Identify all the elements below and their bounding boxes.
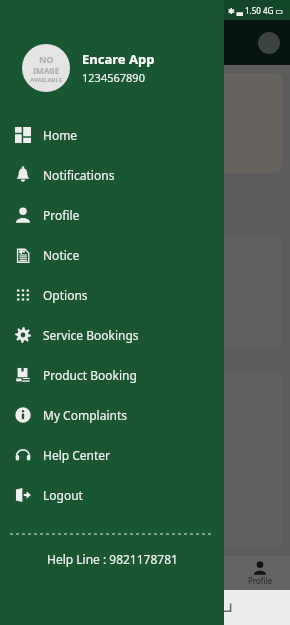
button[interactable]: My Complaints: [0, 395, 224, 435]
staticText: Active Plan: [29, 136, 81, 150]
staticText: 1234567890: [82, 70, 145, 85]
staticText: Options: [43, 287, 88, 303]
staticText: Profile: [43, 207, 80, 223]
button[interactable]: Options: [0, 275, 224, 315]
staticText: NO: [39, 53, 54, 65]
staticText: Home: [43, 127, 78, 143]
staticText: ✱ ▃ 1.50 4G ▭: [228, 5, 284, 16]
button[interactable]: Notifications: [0, 155, 224, 195]
staticText: Notifications: [43, 167, 115, 183]
button[interactable]: Service Bookings: [0, 315, 224, 355]
staticText: Help Center: [43, 447, 111, 463]
staticText: to 31-01-2021: [16, 122, 81, 136]
staticText: AVAILABLE: [30, 76, 63, 84]
button[interactable]: Home: [0, 115, 224, 155]
staticText: Subscribed: [23, 81, 81, 96]
button[interactable]: Home Secu: [8, 373, 282, 548]
staticText: IMAGE: [33, 65, 60, 76]
button[interactable]: Profile: [0, 195, 224, 235]
staticText: Logout: [43, 487, 83, 503]
button[interactable]: Logout: [0, 475, 224, 515]
button[interactable]: Profile: [230, 556, 290, 590]
staticText: Product Booking: [43, 367, 137, 383]
button[interactable]: Subscribed: [8, 73, 282, 173]
staticText: Service Bookings: [43, 327, 139, 343]
staticText: Profile: [248, 575, 273, 586]
button[interactable]: Doorstep: [8, 237, 282, 347]
button[interactable]: Notice: [0, 235, 224, 275]
button[interactable]: Product Booking: [0, 355, 224, 395]
button[interactable]: Help Center: [0, 435, 224, 475]
staticText: Notice: [43, 247, 80, 263]
staticText: My Complaints: [43, 407, 127, 423]
staticText: Help Line : 9821178781: [47, 551, 178, 567]
staticText: Encare App: [82, 50, 155, 68]
button[interactable]: Back: [210, 593, 240, 623]
button[interactable]: Profile avatar: [258, 32, 280, 54]
